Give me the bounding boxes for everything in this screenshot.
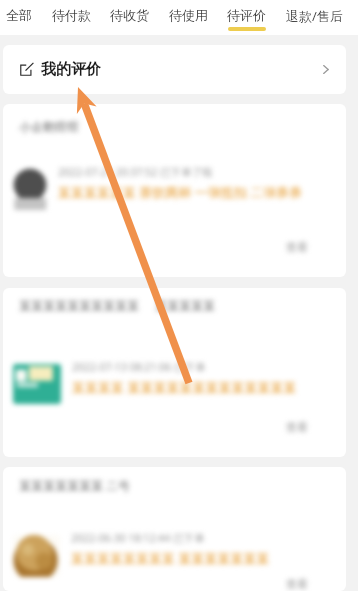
staticText: 某某某某某某某某 某某某某某某某 — [71, 549, 270, 567]
staticText: 待使用 — [169, 7, 208, 23]
button[interactable]: 查看 — [286, 577, 338, 591]
button[interactable]: 待使用 — [166, 0, 220, 27]
button[interactable]: 全部 — [3, 0, 44, 27]
staticText: 查看 — [286, 420, 308, 434]
staticText: 2022-07-13 08:21:06 已下单 — [72, 360, 206, 374]
staticText: 2022-06-30 18:12:44 已下单 — [71, 531, 205, 545]
button[interactable]: 待付款 — [49, 0, 103, 27]
staticText: 全部 — [6, 7, 32, 23]
button[interactable]: 查看 — [286, 420, 338, 434]
staticText: 退款/售后 — [286, 7, 343, 25]
button[interactable]: 退款/售后 — [283, 0, 355, 29]
staticText: 待收货 — [110, 7, 149, 23]
staticText: 待付款 — [52, 7, 91, 23]
staticText: 查看 — [286, 577, 308, 591]
staticText: 2022-07-21 20:37:52 已下单了啦 — [58, 165, 213, 179]
staticText: 某某某某某某某某某某 — [19, 298, 139, 313]
staticText: 某某某某某 — [155, 298, 215, 313]
button[interactable]: 小企鹅馆馆 — [3, 104, 346, 277]
staticText: 查看 — [286, 240, 308, 254]
staticText: 某某某某某某 茶饮两杯 一张抵扣 二张券券 — [58, 183, 303, 201]
staticText: 某某某某 某某某某某某某某某某某某某 — [72, 378, 297, 396]
button[interactable]: 待评价 — [224, 0, 278, 31]
staticText: 小企鹅馆馆 — [19, 119, 79, 134]
other: Go to my reviews — [319, 63, 332, 76]
button[interactable]: 我的评价 — [3, 45, 346, 94]
staticText: 我的评价 — [41, 60, 101, 79]
button[interactable]: 某某某某某某某某某某 — [3, 288, 346, 457]
staticText: 待评价 — [227, 7, 266, 23]
button[interactable]: 待收货 — [107, 0, 161, 27]
staticText: 某某某某某某某 二号 — [19, 477, 131, 493]
button[interactable]: 查看 — [286, 240, 338, 254]
button[interactable]: 某某某某某某某 二号 — [3, 467, 346, 591]
